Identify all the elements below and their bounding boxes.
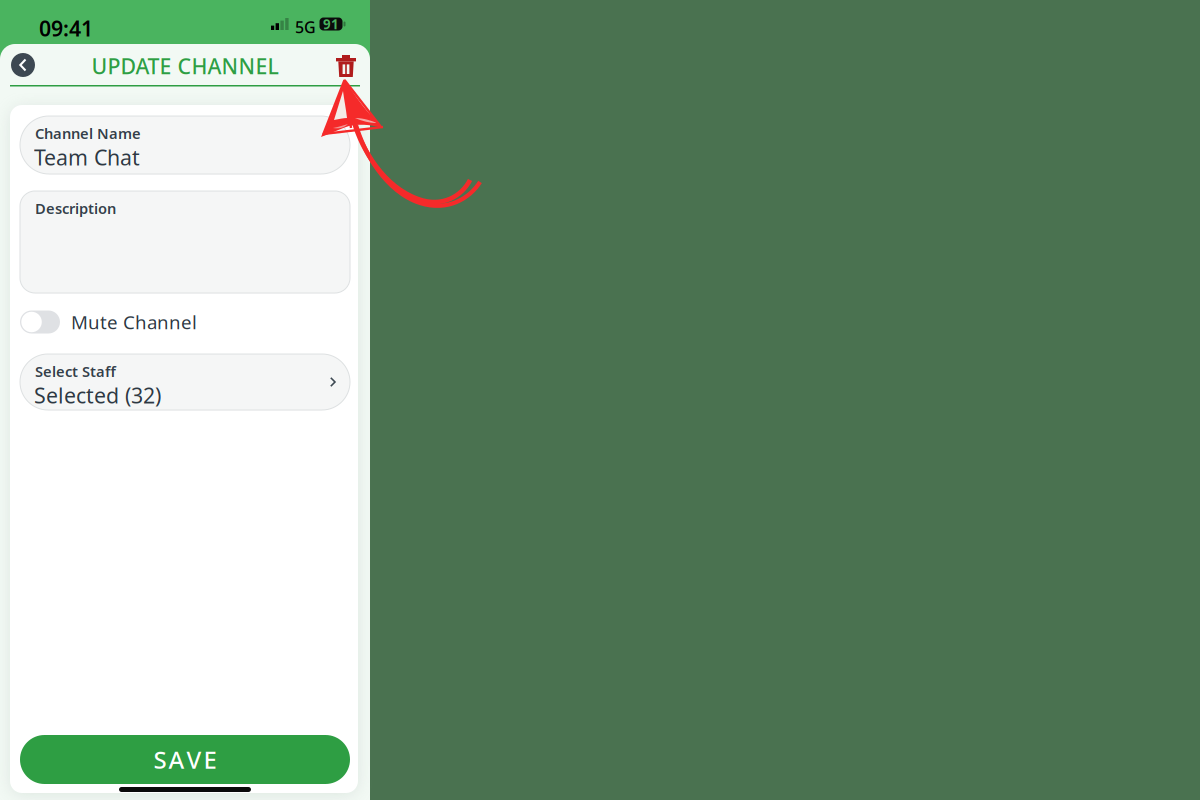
staticText: 09:41 (39, 14, 93, 42)
staticText: UPDATE CHANNEL (91, 52, 278, 80)
staticText: Select Staff (35, 361, 116, 381)
button[interactable]: Back (5, 47, 41, 83)
staticText: S A V E (153, 744, 216, 775)
staticText: 5G (295, 16, 316, 38)
button[interactable]: S A V E (20, 735, 350, 784)
staticText: Channel Name (35, 123, 141, 143)
staticText: Description (35, 198, 116, 218)
button[interactable]: Mute Channel (20, 309, 350, 335)
button[interactable]: Delete channel (328, 48, 364, 84)
staticText: Team Chat (34, 143, 140, 171)
staticText: Mute Channel (71, 310, 197, 334)
staticText: Selected (32) (34, 381, 161, 409)
staticText: 91 (323, 15, 339, 33)
